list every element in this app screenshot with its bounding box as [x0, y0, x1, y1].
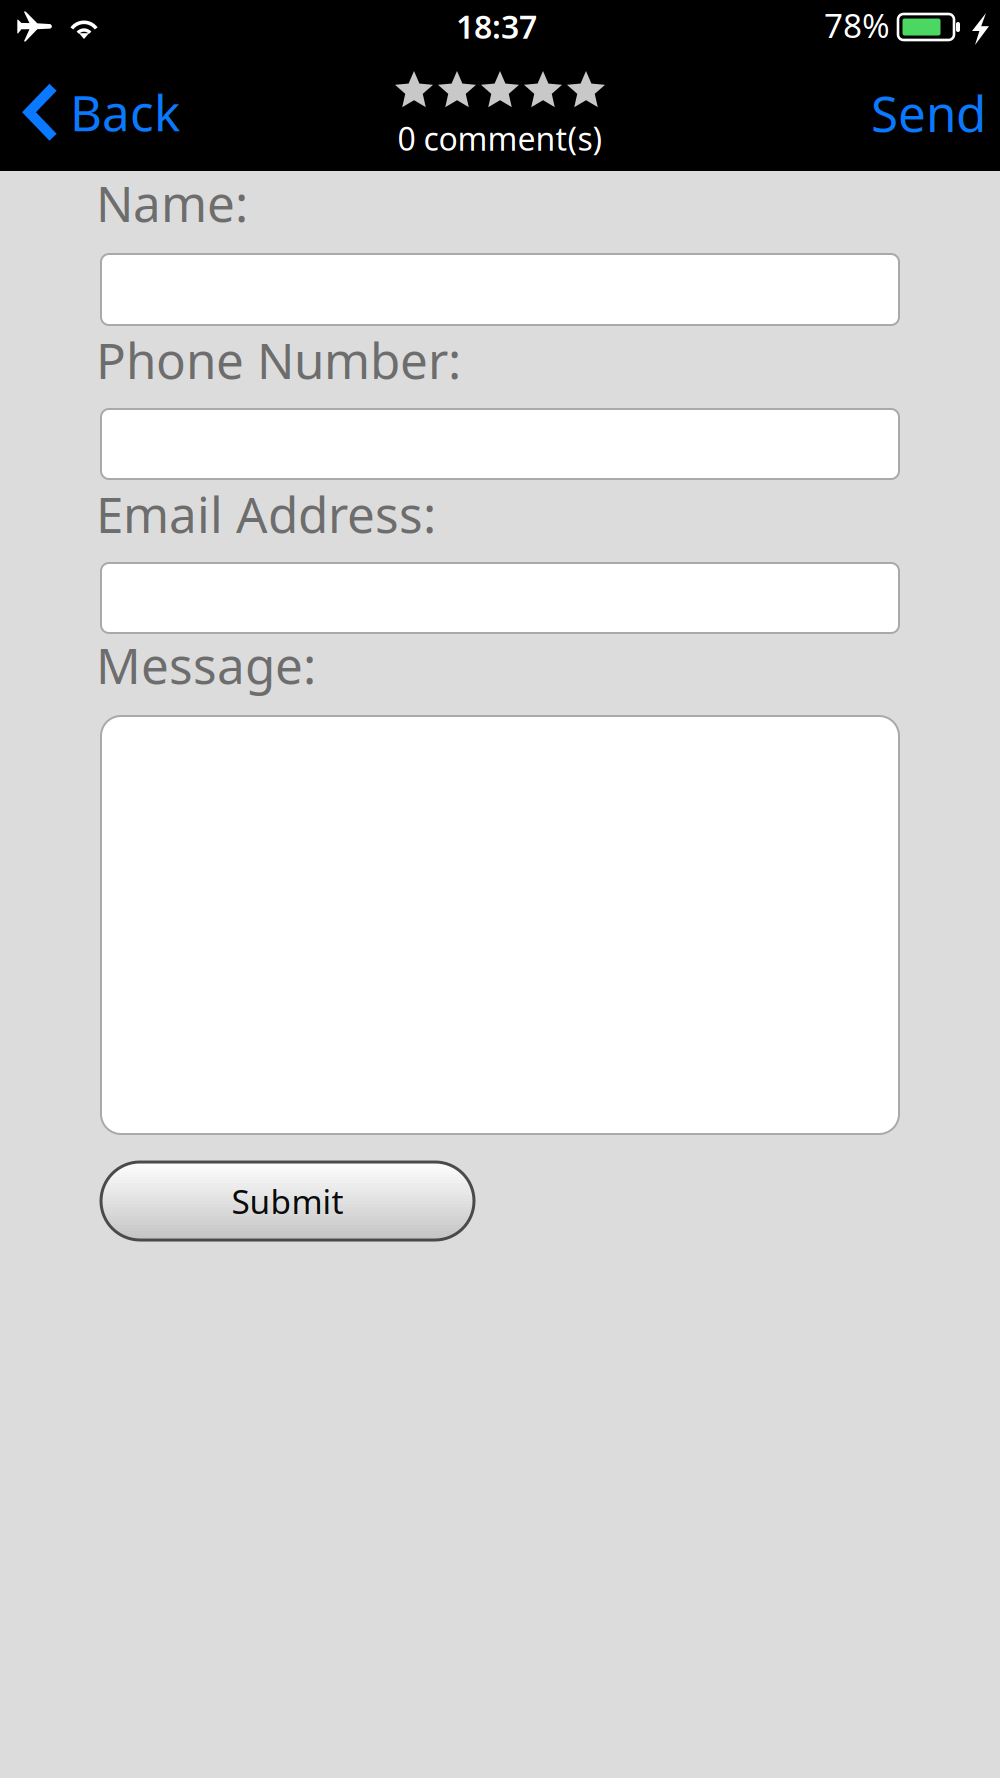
button[interactable]: Email Address: [101, 563, 899, 633]
staticText: Name:: [96, 170, 248, 235]
staticText: Back: [70, 79, 180, 145]
staticText: Submit: [231, 1179, 343, 1223]
button[interactable]: Message: [101, 716, 899, 1134]
staticText: 78%: [824, 3, 890, 47]
staticText: Email Address:: [96, 481, 436, 546]
staticText: Message:: [96, 632, 316, 697]
button[interactable]: Back: [22, 71, 181, 131]
staticText: Send: [871, 80, 986, 145]
button[interactable]: Phone Number: [101, 409, 899, 479]
button[interactable]: Submit: [101, 1162, 474, 1240]
staticText: 18:37: [456, 5, 537, 47]
button[interactable]: Send: [871, 72, 986, 153]
staticText: Phone Number:: [96, 327, 461, 392]
staticText: 0 comment(s): [397, 117, 602, 159]
button[interactable]: Name: [101, 254, 899, 325]
